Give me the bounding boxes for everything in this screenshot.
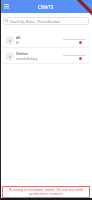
staticText: Nathan (16, 51, 29, 56)
staticText: 10/12/2023 4:30 PM (63, 53, 86, 56)
staticText: Running in emulator mode. Do not use wit… (3, 187, 89, 197)
button[interactable]: Open navigation menu (2, 2, 11, 11)
button[interactable]: Nathan (3, 49, 89, 63)
staticText: sound thinking (16, 57, 38, 61)
staticText: 10/12/2023 4:30 PM (63, 37, 86, 40)
staticText: Hi (16, 41, 19, 45)
staticText: CHATS (38, 4, 54, 10)
button[interactable]: Search by Name, Phone Number (3, 17, 89, 25)
staticText: AB (16, 35, 21, 40)
button[interactable]: AB (3, 33, 89, 47)
staticText: Search by Name, Phone Number (10, 19, 61, 23)
